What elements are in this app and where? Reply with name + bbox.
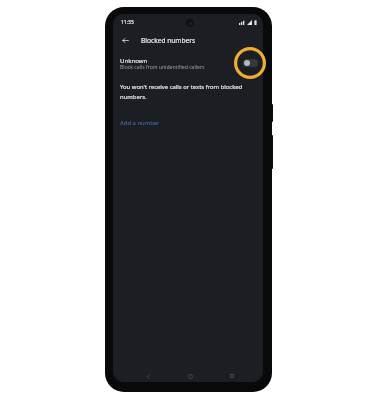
staticText: Block calls from unidentified callers [120,64,205,71]
staticText: You won't receive calls or texts from bl… [120,83,253,101]
staticText: Unknown [120,56,148,64]
staticText: Add a number [120,119,160,127]
button[interactable]: Recent apps [224,368,240,382]
button[interactable]: Home [182,368,198,382]
button[interactable]: Back [118,33,132,47]
staticText: Blocked numbers [141,36,196,45]
button[interactable]: Unknown [113,52,263,80]
staticText: 11:35 [121,19,134,26]
button[interactable]: Back [140,368,156,382]
button[interactable]: Block unknown callers toggle [243,59,258,67]
button[interactable]: Add a number [117,116,163,130]
